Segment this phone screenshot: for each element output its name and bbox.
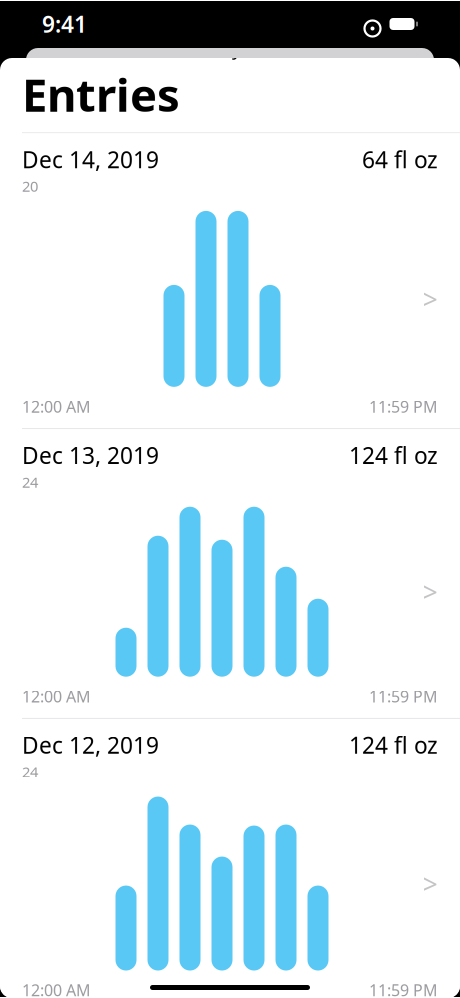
staticText: 124 fl oz bbox=[349, 440, 438, 470]
staticText: Dec 13, 2019 bbox=[22, 440, 159, 470]
staticText: > bbox=[422, 281, 437, 317]
staticText: 12:00 AM bbox=[22, 979, 91, 998]
staticText: 11:59 PM bbox=[369, 396, 438, 417]
staticText: Dec 12, 2019 bbox=[22, 730, 159, 760]
button[interactable]: Dec 12, 2019 bbox=[0, 719, 460, 998]
staticText: > bbox=[422, 574, 437, 609]
button[interactable]: Monthly bbox=[230, 23, 303, 49]
button[interactable]: Dec 13, 2019 bbox=[0, 429, 460, 718]
button[interactable]: Daily bbox=[82, 23, 155, 49]
staticText: Yearly bbox=[314, 24, 368, 48]
staticText: Entries bbox=[22, 64, 180, 124]
staticText: 11:59 PM bbox=[369, 979, 438, 998]
staticText: 64 fl oz bbox=[362, 144, 438, 174]
button[interactable]: Yearly bbox=[304, 23, 377, 49]
staticText: 20 bbox=[22, 176, 38, 196]
staticText: Monthly bbox=[232, 11, 302, 61]
staticText: 12:00 AM bbox=[22, 396, 91, 417]
staticText: 124 fl oz bbox=[349, 730, 438, 760]
staticText: > bbox=[422, 866, 437, 901]
staticText: 12:00 AM bbox=[22, 686, 91, 707]
button[interactable]: Dec 14, 2019 bbox=[0, 133, 460, 428]
staticText: Dec 14, 2019 bbox=[22, 144, 159, 174]
staticText: 9:41 bbox=[42, 9, 87, 39]
staticText: 24 bbox=[22, 472, 38, 492]
button[interactable]: Weekly bbox=[156, 23, 229, 49]
staticText: 11:59 PM bbox=[369, 686, 438, 707]
staticText: 24 bbox=[22, 762, 38, 782]
